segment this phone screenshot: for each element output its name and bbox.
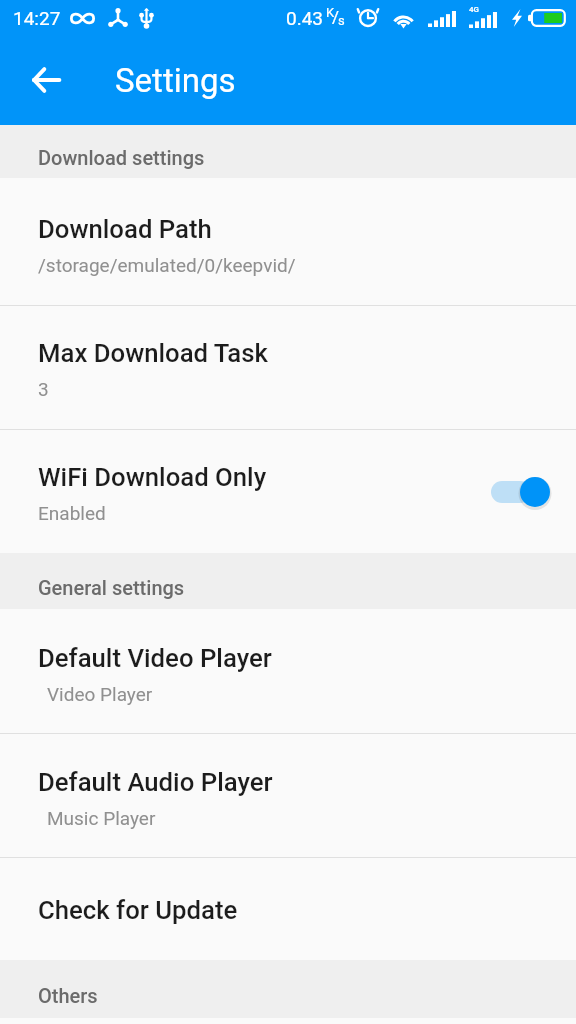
staticText: Check for Update: [38, 895, 238, 925]
staticText: 0.43: [286, 7, 324, 29]
button[interactable]: Download Path: [0, 178, 576, 305]
staticText: s: [338, 13, 345, 28]
button[interactable]: Max Download Task: [0, 306, 576, 429]
staticText: K: [326, 5, 335, 20]
button[interactable]: WiFi Download Only: [0, 430, 576, 553]
button[interactable]: WiFi Download Only switch: [486, 475, 550, 509]
staticText: /storage/emulated/0/keepvid/: [38, 254, 296, 276]
staticText: Default Audio Player: [38, 767, 273, 797]
staticText: 3: [38, 378, 49, 400]
staticText: WiFi Download Only: [38, 462, 267, 492]
staticText: Download Path: [38, 214, 212, 244]
button[interactable]: Back: [20, 54, 72, 106]
staticText: Settings: [115, 61, 236, 100]
staticText: Enabled: [38, 502, 106, 524]
staticText: 4G: [469, 5, 479, 14]
staticText: Music Player: [47, 807, 156, 829]
button[interactable]: Default Audio Player: [0, 734, 576, 857]
staticText: Default Video Player: [38, 643, 272, 673]
staticText: Max Download Task: [38, 338, 268, 368]
staticText: Others: [38, 984, 98, 1007]
button[interactable]: Default Video Player: [0, 609, 576, 733]
staticText: General settings: [38, 576, 185, 599]
staticText: Video Player: [47, 683, 153, 705]
button[interactable]: Check for Update: [0, 858, 576, 960]
staticText: /: [332, 7, 340, 27]
staticText: 14:27: [13, 7, 61, 29]
staticText: Download settings: [38, 146, 205, 169]
